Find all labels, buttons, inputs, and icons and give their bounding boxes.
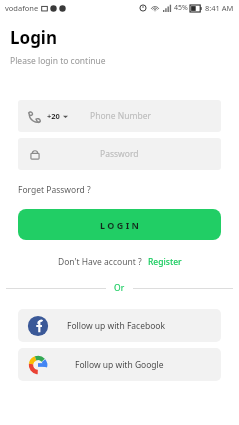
button[interactable]: +20 <box>18 100 221 132</box>
staticText: Follow up with Facebook <box>67 320 166 332</box>
staticText: Login <box>10 26 58 49</box>
staticText: 8:41 AM <box>205 3 234 13</box>
staticText: Forget Password ? <box>18 184 91 196</box>
staticText: Password <box>100 148 139 160</box>
staticText: Follow up with Google <box>75 359 164 371</box>
staticText: 45% <box>174 3 188 13</box>
button[interactable]: Follow up with Facebook <box>18 309 221 342</box>
staticText: Or <box>114 282 125 294</box>
staticText: Phone Number <box>90 110 151 122</box>
button[interactable]: Follow up with Google <box>18 348 221 381</box>
staticText: Register <box>148 256 182 268</box>
button[interactable]: Register <box>148 256 182 268</box>
button[interactable]: L O G I N <box>18 209 221 240</box>
staticText: +20 <box>47 111 60 121</box>
staticText: Please login to continue <box>10 55 106 67</box>
staticText: L O G I N <box>100 219 139 231</box>
button[interactable]: Forget Password ? <box>18 184 91 196</box>
staticText: Don't Have account ? <box>58 256 142 268</box>
staticText: vodafone <box>5 3 39 13</box>
button[interactable]: Password <box>18 138 221 170</box>
